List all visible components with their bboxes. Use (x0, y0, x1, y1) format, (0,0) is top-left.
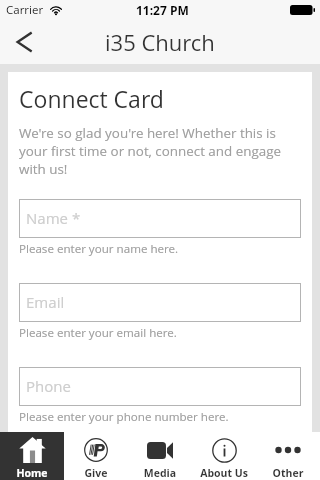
staticText: Give (64, 466, 128, 480)
staticText: Email (26, 292, 65, 312)
staticText: i35 Church (105, 27, 215, 57)
button[interactable]: Other (256, 432, 320, 480)
button[interactable]: Email (19, 283, 301, 322)
staticText: Home (0, 466, 64, 480)
staticText: Please enter your phone number here. (19, 409, 229, 425)
staticText: We're so glad you're here! Whether this … (19, 124, 301, 178)
button[interactable]: Media (128, 432, 192, 480)
button[interactable]: About Us (192, 432, 256, 480)
staticText: Phone (26, 376, 71, 396)
staticText: Connect Card (19, 83, 164, 114)
button[interactable]: Home (0, 432, 64, 480)
staticText: Carrier (6, 2, 44, 18)
staticText: Media (128, 466, 192, 480)
staticText: Please enter your email here. (19, 325, 177, 341)
staticText: 11:27 PM (136, 2, 189, 18)
staticText: Other (256, 466, 320, 480)
staticText: Please enter your name here. (19, 241, 179, 257)
button[interactable]: Name * (19, 199, 301, 238)
button[interactable]: Phone (19, 367, 301, 406)
button[interactable]: Back (0, 20, 48, 64)
staticText: About Us (192, 466, 256, 480)
staticText: Name * (26, 208, 81, 228)
button[interactable]: Give (64, 432, 128, 480)
